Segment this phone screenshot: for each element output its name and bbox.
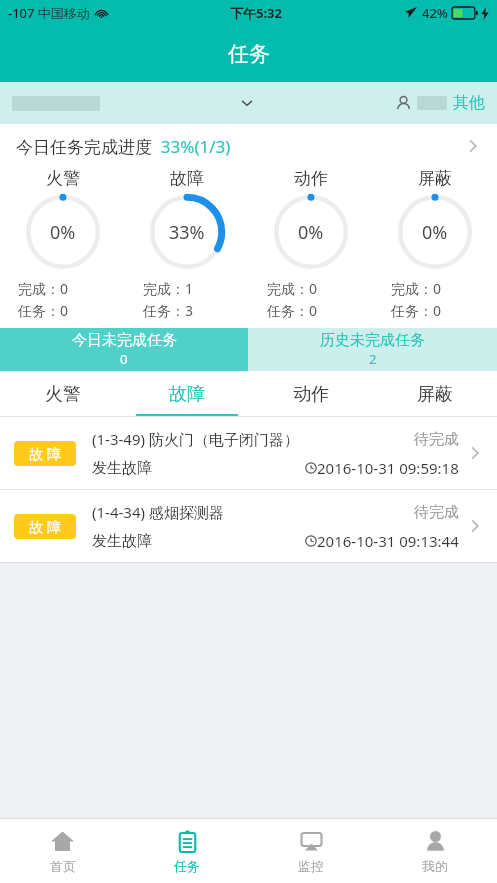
staticText: 2016-10-31 09:13:44: [317, 531, 459, 551]
other: 查看详情: [465, 138, 481, 154]
staticText: 动作: [293, 383, 329, 406]
button[interactable]: 屏蔽: [373, 371, 497, 417]
staticText: 火警: [45, 383, 81, 406]
staticText: -107 中国移动: [8, 4, 90, 22]
staticText: 监控: [298, 858, 324, 874]
staticText: 完成：0: [18, 279, 69, 298]
button[interactable]: 首页: [0, 819, 125, 883]
staticText: 我的: [422, 858, 448, 874]
button[interactable]: 监控: [249, 819, 373, 883]
button[interactable]: 今日未完成任务: [0, 328, 248, 371]
staticText: 任务: [228, 41, 270, 67]
button[interactable]: 其他: [395, 82, 485, 124]
staticText: 任务：0: [267, 301, 318, 320]
staticText: 42%: [422, 4, 448, 22]
staticText: 发生故障: [92, 532, 152, 551]
button[interactable]: 我的: [373, 819, 497, 883]
button[interactable]: 动作: [249, 168, 373, 271]
staticText: 任务: [174, 858, 200, 874]
staticText: 今日任务完成进度 33%(1/3): [16, 135, 231, 158]
staticText: 0%: [298, 220, 324, 245]
staticText: 0%: [422, 220, 448, 245]
staticText: 完成：0: [391, 279, 442, 298]
button[interactable]: 历史未完成任务: [248, 328, 497, 371]
staticText: 发生故障: [92, 459, 152, 478]
button[interactable]: 今日任务完成进度 33%(1/3): [0, 124, 497, 168]
staticText: 故 障: [29, 517, 61, 536]
staticText: 屏蔽: [418, 168, 452, 189]
staticText: 2016-10-31 09:59:18: [317, 458, 459, 478]
button[interactable]: 故障: [125, 168, 249, 271]
button[interactable]: 屏蔽: [373, 168, 497, 271]
staticText: 待完成: [414, 430, 459, 449]
button[interactable]: 火警: [0, 371, 125, 417]
staticText: 完成：1: [143, 279, 194, 298]
staticText: 屏蔽: [417, 383, 453, 406]
staticText: 故 障: [29, 444, 61, 463]
staticText: 其他: [453, 93, 485, 113]
staticText: 待完成: [414, 503, 459, 522]
staticText: 故障: [170, 168, 204, 189]
button[interactable]: 火警: [0, 168, 125, 271]
button[interactable]: 故 障: [0, 417, 497, 489]
staticText: 任务：0: [391, 301, 442, 320]
staticText: 动作: [294, 168, 328, 189]
button[interactable]: 动作: [249, 371, 373, 417]
staticText: 首页: [50, 858, 76, 874]
staticText: 2: [369, 350, 377, 368]
staticText: 故障: [169, 383, 205, 406]
staticText: (1-4-34) 感烟探测器: [92, 502, 224, 522]
button[interactable]: 展开: [12, 82, 395, 124]
staticText: 任务：3: [143, 301, 194, 320]
staticText: 下午5:32: [230, 4, 282, 22]
staticText: 今日未完成任务: [72, 331, 177, 350]
staticText: 0: [120, 350, 128, 368]
other: 展开: [240, 96, 254, 110]
staticText: (1-3-49) 防火门（电子闭门器）: [92, 429, 299, 449]
button[interactable]: 故障: [125, 371, 249, 417]
staticText: 火警: [46, 168, 80, 189]
button[interactable]: 故 障: [0, 490, 497, 562]
staticText: 任务：0: [18, 301, 69, 320]
staticText: 历史未完成任务: [320, 331, 425, 350]
button[interactable]: 任务: [125, 819, 249, 883]
staticText: 0%: [50, 220, 76, 245]
staticText: 33%: [169, 220, 205, 245]
staticText: 完成：0: [267, 279, 318, 298]
